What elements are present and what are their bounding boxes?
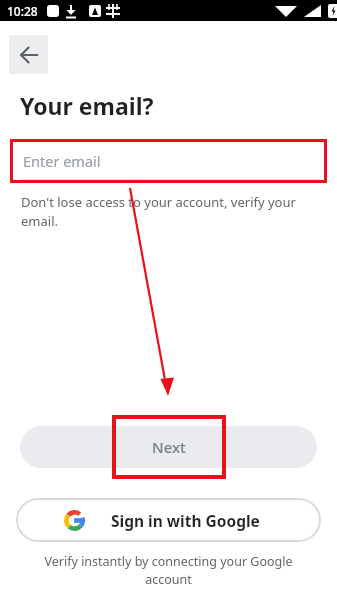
button[interactable]: Sign in with Google: [16, 498, 321, 542]
staticText: Your email?: [20, 90, 154, 121]
button[interactable]: Back: [9, 35, 48, 74]
staticText: Don't lose access to your account, verif…: [21, 193, 296, 230]
staticText: Enter email: [23, 151, 101, 171]
button[interactable]: Enter email: [13, 142, 324, 180]
button[interactable]: Next: [20, 426, 317, 468]
staticText: Sign in with Google: [111, 510, 260, 531]
staticText: 10:28: [7, 3, 38, 19]
staticText: Next: [152, 437, 186, 457]
staticText: Verify instantly by connecting your Goog…: [24, 553, 313, 588]
